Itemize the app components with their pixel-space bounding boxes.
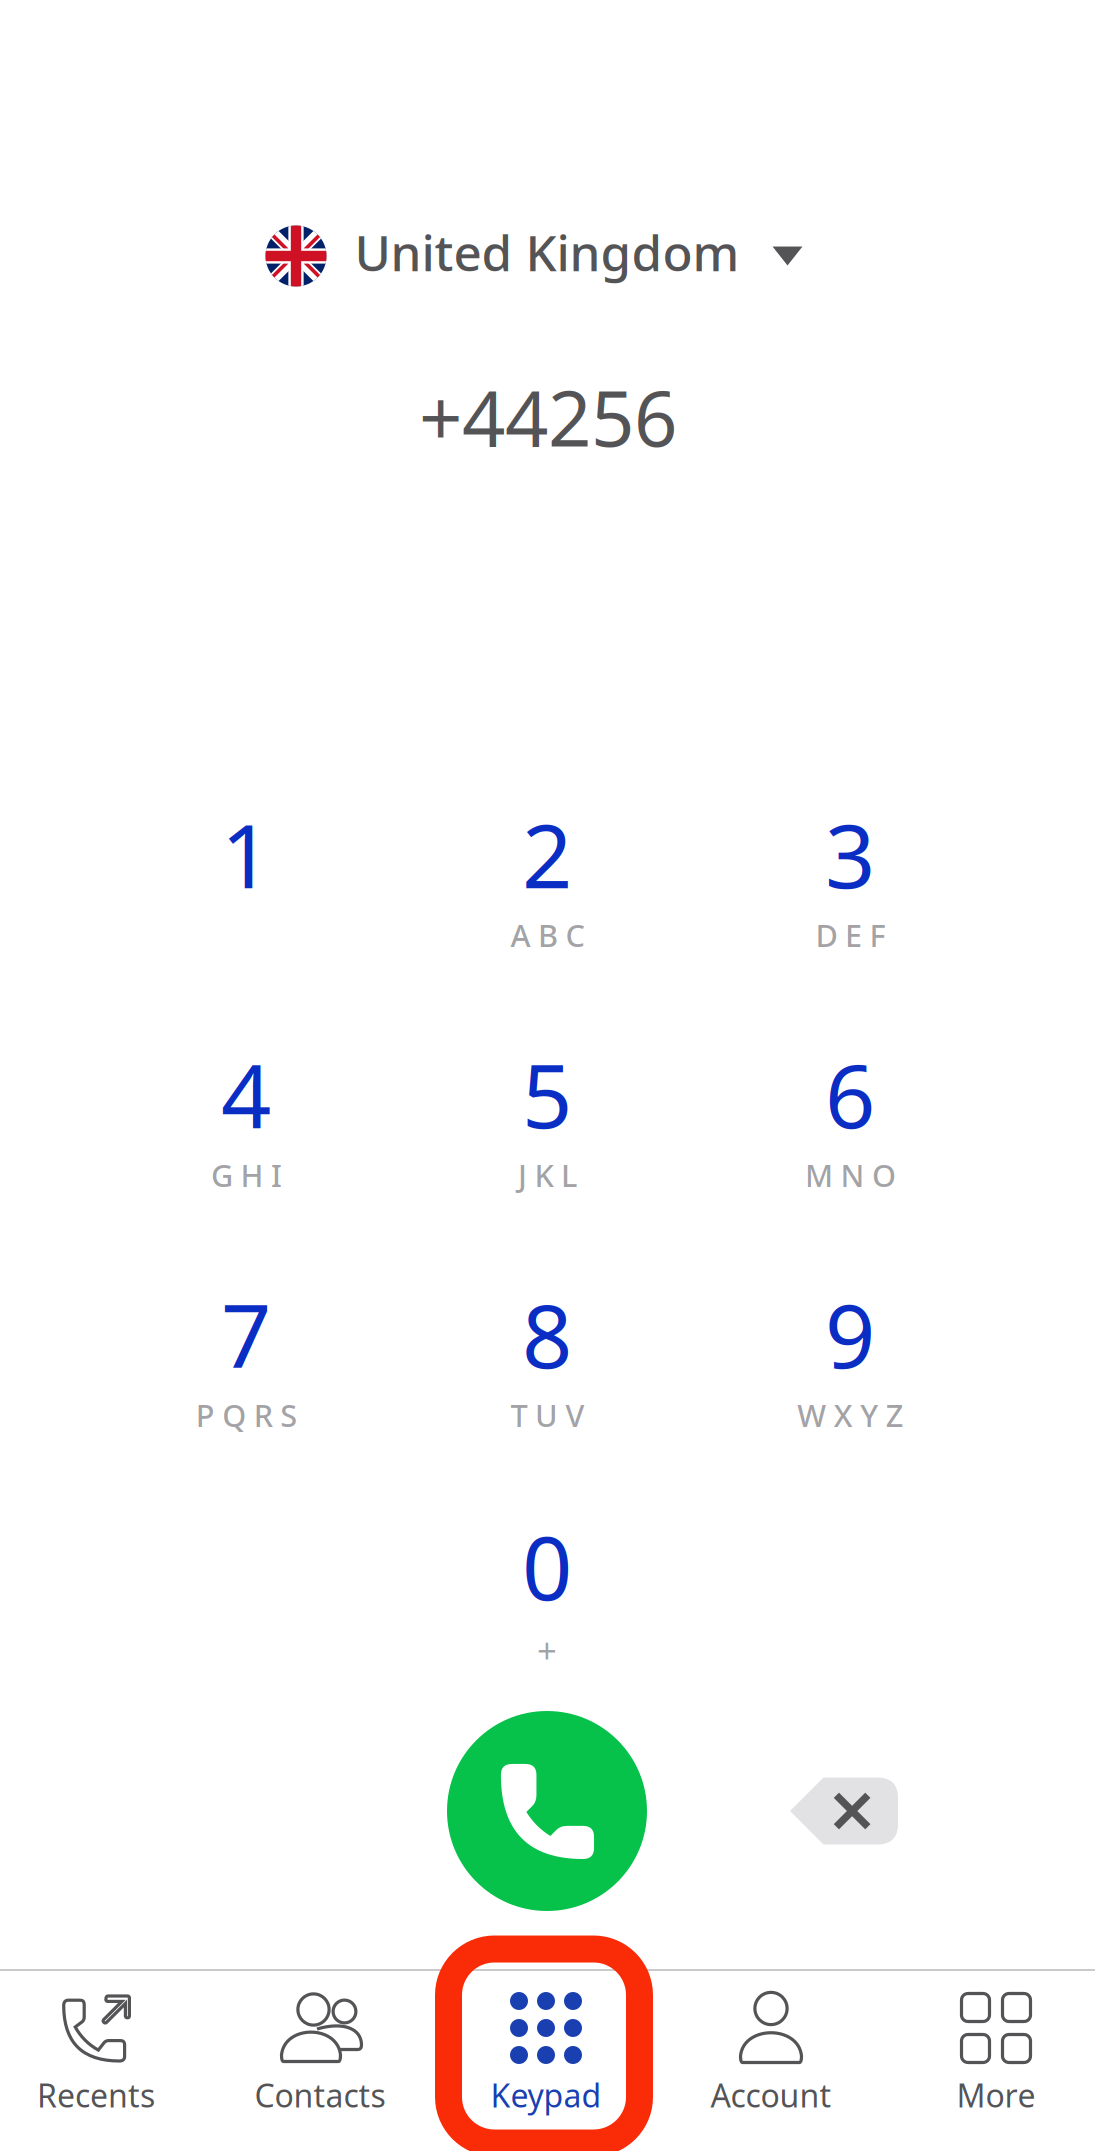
button[interactable]: More <box>887 1972 1095 2151</box>
staticText: 4 <box>221 1036 271 1152</box>
button[interactable]: 1 <box>101 784 391 1000</box>
button[interactable]: Recents <box>0 1972 205 2151</box>
button[interactable]: 2 <box>402 784 692 1000</box>
staticText: 7 <box>221 1276 271 1392</box>
staticText: + <box>537 1627 557 1673</box>
button[interactable]: Account <box>662 1972 880 2151</box>
staticText: 1 <box>221 796 271 912</box>
button[interactable]: 8 <box>402 1264 692 1480</box>
staticText: DEF <box>815 915 885 955</box>
button[interactable]: 4 <box>101 1024 391 1240</box>
staticText: United Kingdom <box>354 219 739 285</box>
button[interactable]: 9 <box>705 1264 995 1480</box>
staticText: Contacts <box>254 2074 385 2116</box>
button[interactable]: United Kingdom <box>265 213 802 299</box>
staticText: PQRS <box>196 1395 297 1435</box>
button[interactable]: 5 <box>402 1024 692 1240</box>
staticText: 3 <box>825 796 875 912</box>
staticText: TUV <box>510 1395 584 1435</box>
staticText: GHI <box>211 1155 282 1195</box>
staticText: 0 <box>522 1508 572 1624</box>
button[interactable]: 7 <box>101 1264 391 1480</box>
staticText: WXYZ <box>797 1395 904 1435</box>
staticText: 9 <box>825 1276 875 1392</box>
button[interactable]: 0 <box>402 1496 692 1712</box>
staticText: Keypad <box>490 2074 601 2116</box>
staticText: MNO <box>805 1155 896 1195</box>
staticText: JKL <box>518 1155 577 1195</box>
staticText: Account <box>710 2074 831 2116</box>
button[interactable]: Call <box>447 1711 647 1911</box>
staticText: More <box>956 2074 1035 2116</box>
staticText: 5 <box>522 1036 572 1152</box>
button[interactable]: 6 <box>705 1024 995 1240</box>
staticText: 6 <box>825 1036 875 1152</box>
staticText: +44256 <box>419 366 677 467</box>
button[interactable]: Contacts <box>211 1972 429 2151</box>
staticText: ABC <box>510 915 584 955</box>
staticText: 8 <box>522 1276 572 1392</box>
button[interactable]: Delete <box>790 1777 898 1844</box>
button[interactable]: 3 <box>705 784 995 1000</box>
staticText: Recents <box>37 2074 155 2116</box>
button[interactable]: Keypad <box>437 1972 655 2151</box>
staticText: 2 <box>522 796 572 912</box>
